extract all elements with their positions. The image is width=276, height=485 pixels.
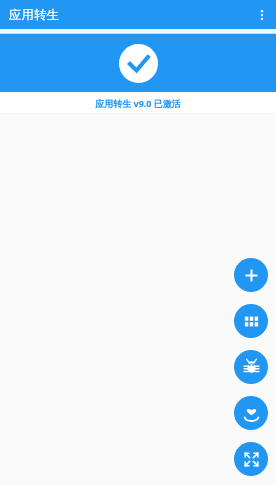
button[interactable]: Debug bbox=[234, 350, 268, 384]
button[interactable]: Apps bbox=[234, 304, 268, 338]
staticText: 应用转生 bbox=[9, 7, 59, 23]
button[interactable]: More options bbox=[250, 3, 274, 27]
button[interactable]: Fullscreen bbox=[234, 442, 268, 476]
button[interactable] bbox=[0, 34, 276, 92]
staticText: 应用转生 v9.0 已激活 bbox=[95, 97, 181, 109]
button[interactable]: Add bbox=[234, 258, 268, 292]
button[interactable]: Donate bbox=[234, 396, 268, 430]
